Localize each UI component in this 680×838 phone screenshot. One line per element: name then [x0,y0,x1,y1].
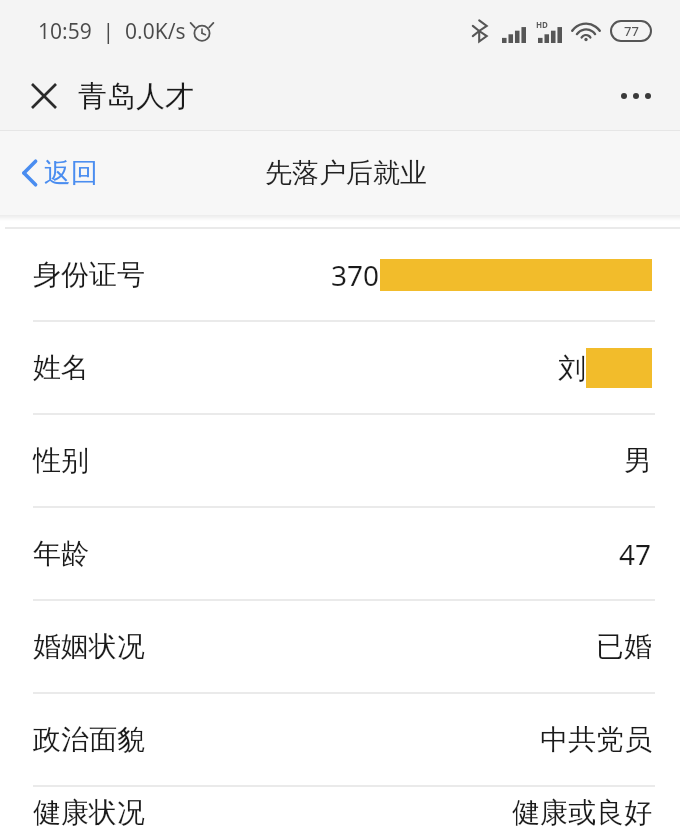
button[interactable]: 政治面貌 [0,694,680,785]
staticText: 中共党员 [540,722,652,757]
staticText: 77 [624,22,639,40]
staticText: 身份证号 [33,257,145,292]
staticText: 姓名 [33,350,89,385]
button[interactable]: 返回 [14,150,106,196]
button[interactable]: 婚姻状况 [0,601,680,692]
staticText: 47 [619,535,652,573]
staticText: 政治面貌 [33,722,145,757]
staticText: 青岛人才 [78,78,194,115]
button[interactable]: 性别 [0,415,680,506]
staticText: 健康状况 [33,795,145,830]
button[interactable]: 健康状况 [0,787,680,838]
button[interactable]: More options [610,70,662,122]
staticText: 370 [331,256,380,294]
staticText: 年龄 [33,536,89,571]
button[interactable]: Close [22,74,66,118]
staticText: 健康或良好 [512,795,652,830]
button[interactable]: 年龄 [0,508,680,599]
button[interactable]: 姓名 [0,322,680,413]
staticText: 返回 [44,156,98,190]
staticText: 男 [624,443,652,478]
staticText: HD [536,19,548,30]
staticText: 先落户后就业 [265,156,427,190]
button[interactable]: 身份证号 [0,229,680,320]
staticText: 性别 [33,443,89,478]
staticText: 刘 [558,351,586,386]
staticText: 婚姻状况 [33,629,145,664]
staticText: 10:59 | 0.0K/s [38,17,186,46]
staticText: 已婚 [596,629,652,664]
